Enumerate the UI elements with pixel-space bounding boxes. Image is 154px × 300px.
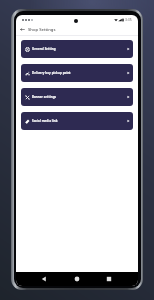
staticText: Banner settings bbox=[32, 95, 57, 99]
button[interactable]: General Setting bbox=[21, 40, 133, 58]
button[interactable]: Back bbox=[39, 274, 49, 284]
staticText: Shop Settings bbox=[28, 27, 56, 33]
staticText: General Setting bbox=[32, 47, 56, 51]
button[interactable]: Home bbox=[72, 274, 82, 284]
button[interactable]: Back bbox=[18, 25, 27, 34]
staticText: Delivery boy pickup point bbox=[32, 71, 71, 75]
button[interactable]: Banner settings bbox=[21, 88, 133, 106]
button[interactable]: Recents bbox=[104, 274, 114, 284]
button[interactable]: Social media link bbox=[21, 112, 133, 130]
button[interactable]: Delivery boy pickup point bbox=[21, 64, 133, 82]
staticText: Social media link bbox=[32, 119, 58, 123]
staticText: 3:35 bbox=[125, 17, 132, 22]
